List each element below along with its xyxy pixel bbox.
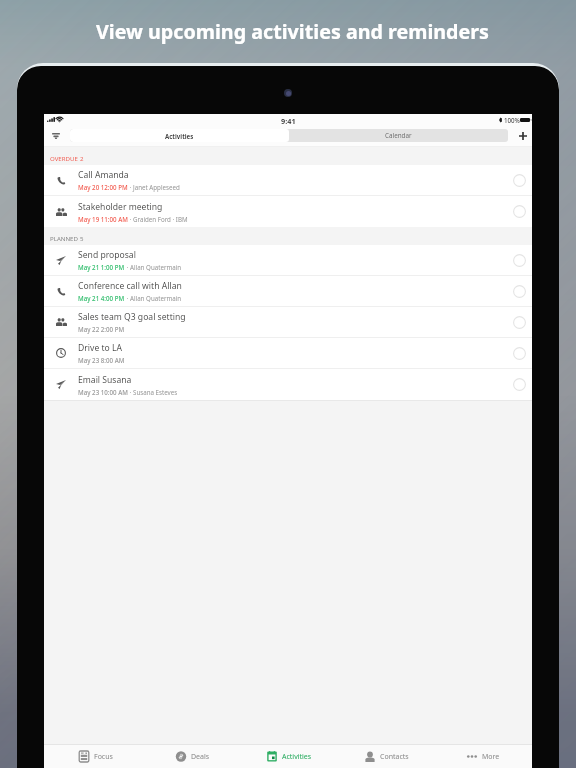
button[interactable]: Contacts [338, 745, 435, 768]
staticText: Susana Esteves [133, 388, 178, 396]
button[interactable]: Activities [241, 745, 338, 768]
staticText: · [128, 183, 133, 191]
staticText: Allan Quatermain [130, 263, 182, 271]
button[interactable]: Conference call with Allan [44, 276, 532, 307]
button[interactable]: Filter [45, 128, 67, 144]
button[interactable]: Drive to LA [44, 338, 532, 369]
staticText: Graiden Ford · IBM [133, 215, 188, 223]
button[interactable]: Send proposal [44, 245, 532, 276]
staticText: May 21 4:00 PM [78, 294, 125, 302]
staticText: Drive to LA [78, 342, 123, 354]
staticText: May 20 12:00 PM [78, 183, 128, 191]
staticText: PLANNED [50, 234, 78, 242]
staticText: May 21 1:00 PM [78, 263, 125, 271]
staticText: Email Susana [78, 374, 132, 386]
staticText: 100% [504, 116, 520, 124]
staticText: Conference call with Allan [78, 280, 182, 292]
button[interactable]: Add [512, 128, 533, 144]
button[interactable]: Focus [47, 745, 144, 768]
button[interactable]: Sales team Q3 goal setting [44, 307, 532, 338]
staticText: May 22 2:00 PM [78, 325, 125, 333]
staticText: Sales team Q3 goal setting [78, 311, 186, 323]
button[interactable]: Deals [144, 745, 241, 768]
button[interactable]: Call Amanda [44, 165, 532, 196]
staticText: · [128, 388, 133, 396]
staticText: Call Amanda [78, 169, 129, 181]
staticText: Calendar [385, 131, 412, 140]
button[interactable]: Stakeholder meeting [44, 196, 532, 227]
staticText: Stakeholder meeting [78, 201, 163, 213]
staticText: 2 [80, 154, 84, 162]
staticText: More [482, 752, 500, 762]
staticText: Focus [94, 752, 113, 762]
button[interactable]: Calendar [289, 129, 508, 142]
button[interactable]: Email Susana [44, 369, 532, 400]
staticText: · [128, 215, 133, 223]
staticText: · [125, 263, 130, 271]
staticText: Send proposal [78, 249, 136, 261]
staticText: Deals [191, 752, 210, 762]
staticText: Activities [165, 132, 194, 140]
staticText: · [125, 294, 130, 302]
button[interactable]: Activities [70, 129, 289, 142]
staticText: Contacts [380, 752, 409, 762]
staticText: May 19 11:00 AM [78, 215, 128, 223]
button[interactable]: More [435, 745, 532, 768]
staticText: 9:41 [281, 116, 296, 126]
staticText: Allan Quatermain [130, 294, 182, 302]
staticText: OVERDUE [50, 154, 78, 162]
staticText: May 23 10:00 AM [78, 388, 128, 396]
staticText: View upcoming activities and reminders [96, 18, 489, 45]
staticText: Janet Appleseed [133, 183, 180, 191]
staticText: Activities [282, 752, 312, 762]
staticText: 5 [80, 234, 84, 242]
staticText: May 23 8:00 AM [78, 356, 125, 364]
